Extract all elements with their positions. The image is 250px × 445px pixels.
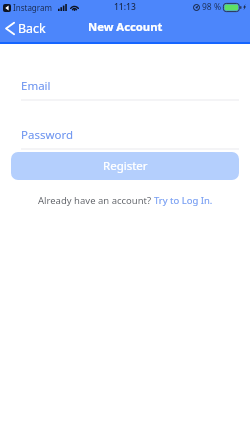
staticText: Already have an account? <box>38 194 154 207</box>
button[interactable]: Password <box>0 127 250 150</box>
staticText: 98 % <box>202 1 221 13</box>
staticText: 11:13 <box>114 1 136 13</box>
button[interactable]: Back <box>0 18 52 39</box>
staticText: Password <box>21 127 74 143</box>
button[interactable]: Try to Log In. <box>154 194 213 207</box>
staticText: New Account <box>88 19 163 34</box>
staticText: Email <box>21 78 51 94</box>
button[interactable]: Email <box>0 78 250 101</box>
staticText: Back <box>18 20 46 37</box>
button[interactable]: Register <box>11 152 239 180</box>
staticText: Register <box>103 158 148 174</box>
staticText: Instagram <box>13 2 52 13</box>
